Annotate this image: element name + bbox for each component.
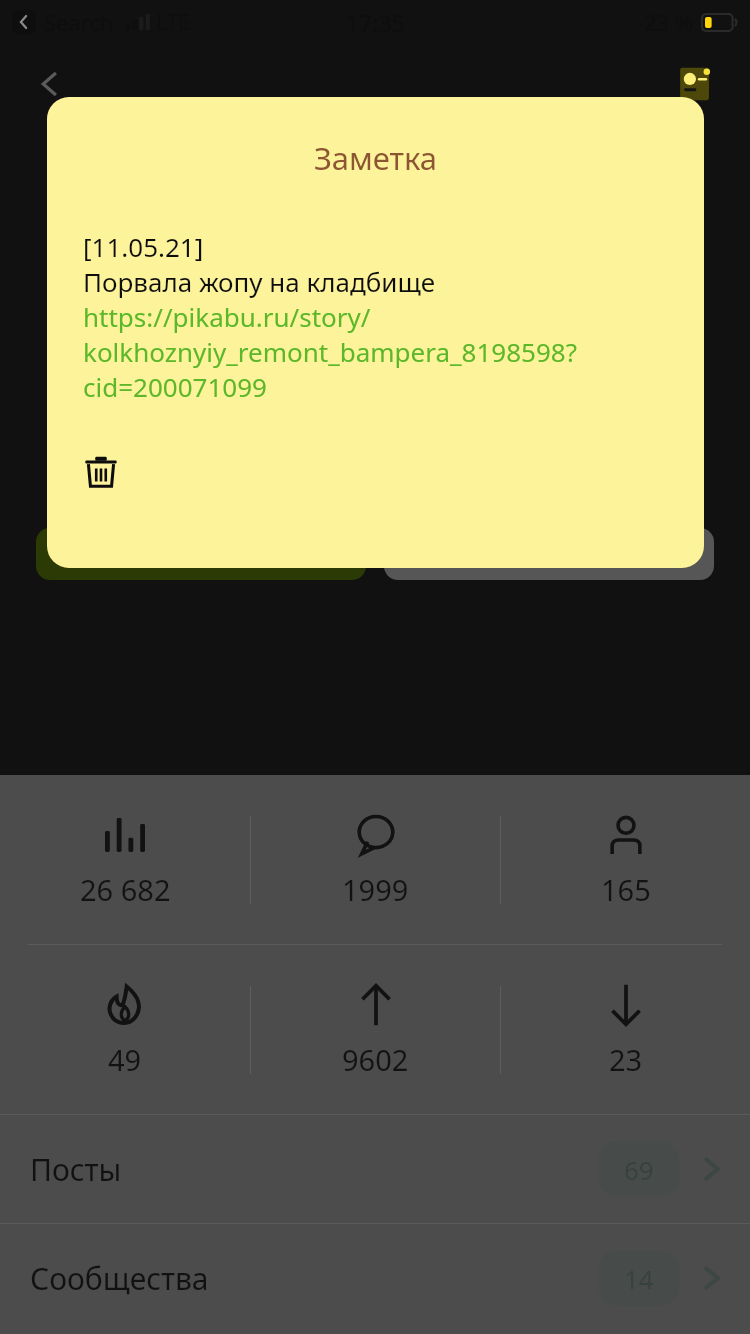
staticText: [11.05.21] (83, 229, 204, 264)
button[interactable]: 26 682 (0, 810, 250, 909)
staticText: 69 (624, 1152, 654, 1187)
staticText: 165 (601, 870, 651, 909)
staticText: 9602 (342, 1040, 409, 1079)
button[interactable] (384, 528, 714, 580)
staticText: 14 (624, 1261, 654, 1296)
button[interactable]: 165 (501, 810, 750, 909)
button[interactable]: 23 (501, 980, 750, 1079)
staticText: Посты (30, 1149, 122, 1190)
staticText: https://pikabu.ru/story/ (83, 299, 371, 334)
staticText: cid=200071099 (83, 369, 267, 404)
button[interactable]: 9602 (251, 980, 500, 1079)
staticText: Заметка (47, 137, 704, 179)
button[interactable]: Посты (0, 1115, 750, 1223)
button[interactable]: Back (26, 60, 74, 108)
staticText: Сообщества (30, 1258, 209, 1299)
button[interactable]: Сообщества (0, 1224, 750, 1332)
staticText: kolkhoznyiy_remont_bampera_8198598? (83, 334, 578, 369)
button[interactable] (36, 528, 366, 580)
staticText: Порвала жопу на кладбище (83, 264, 436, 299)
staticText: 23 (609, 1040, 643, 1079)
button[interactable]: 1999 (251, 810, 500, 909)
staticText: 1999 (342, 870, 409, 909)
button[interactable]: 49 (0, 980, 250, 1079)
staticText: 49 (108, 1040, 142, 1079)
staticText: 26 682 (80, 870, 171, 909)
button[interactable]: Delete note (75, 446, 127, 498)
button[interactable]: Profile (676, 64, 716, 104)
